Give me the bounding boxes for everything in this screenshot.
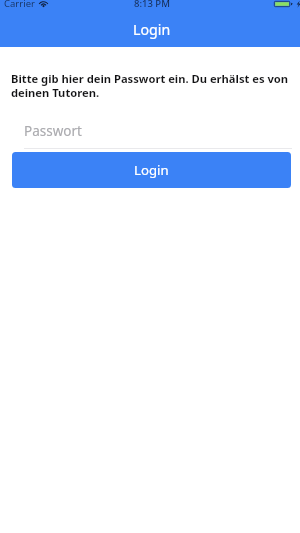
staticText: Passwort: [24, 122, 82, 140]
other: Battery charging: [274, 1, 300, 7]
staticText: Login: [134, 161, 169, 179]
staticText: Carrier: [4, 0, 35, 10]
staticText: Login: [133, 20, 171, 39]
button[interactable]: Login: [12, 152, 291, 188]
other: Wi-Fi: [38, 0, 49, 7]
staticText: 8:13 PM: [134, 0, 170, 10]
button[interactable]: Passwort eingeben: [0, 118, 300, 150]
staticText: Bitte gib hier dein Passwort ein. Du erh…: [11, 71, 296, 101]
